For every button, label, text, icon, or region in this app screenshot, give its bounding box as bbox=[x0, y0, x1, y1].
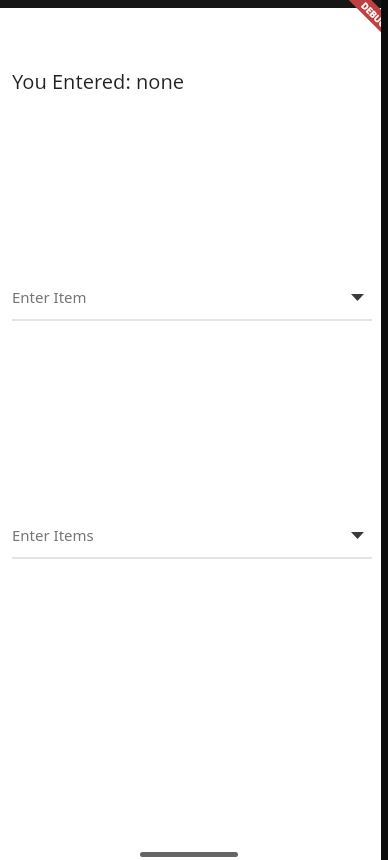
button[interactable]: Enter Items bbox=[0, 521, 388, 559]
staticText: DEBUG bbox=[359, 0, 388, 30]
button[interactable]: Enter Item bbox=[0, 283, 388, 321]
staticText: Enter Items bbox=[12, 525, 94, 545]
staticText: Enter Item bbox=[12, 287, 87, 307]
other: Open Enter Item dropdown bbox=[351, 294, 364, 301]
other: Open Enter Items dropdown bbox=[351, 532, 364, 539]
staticText: You Entered: none bbox=[12, 68, 185, 95]
